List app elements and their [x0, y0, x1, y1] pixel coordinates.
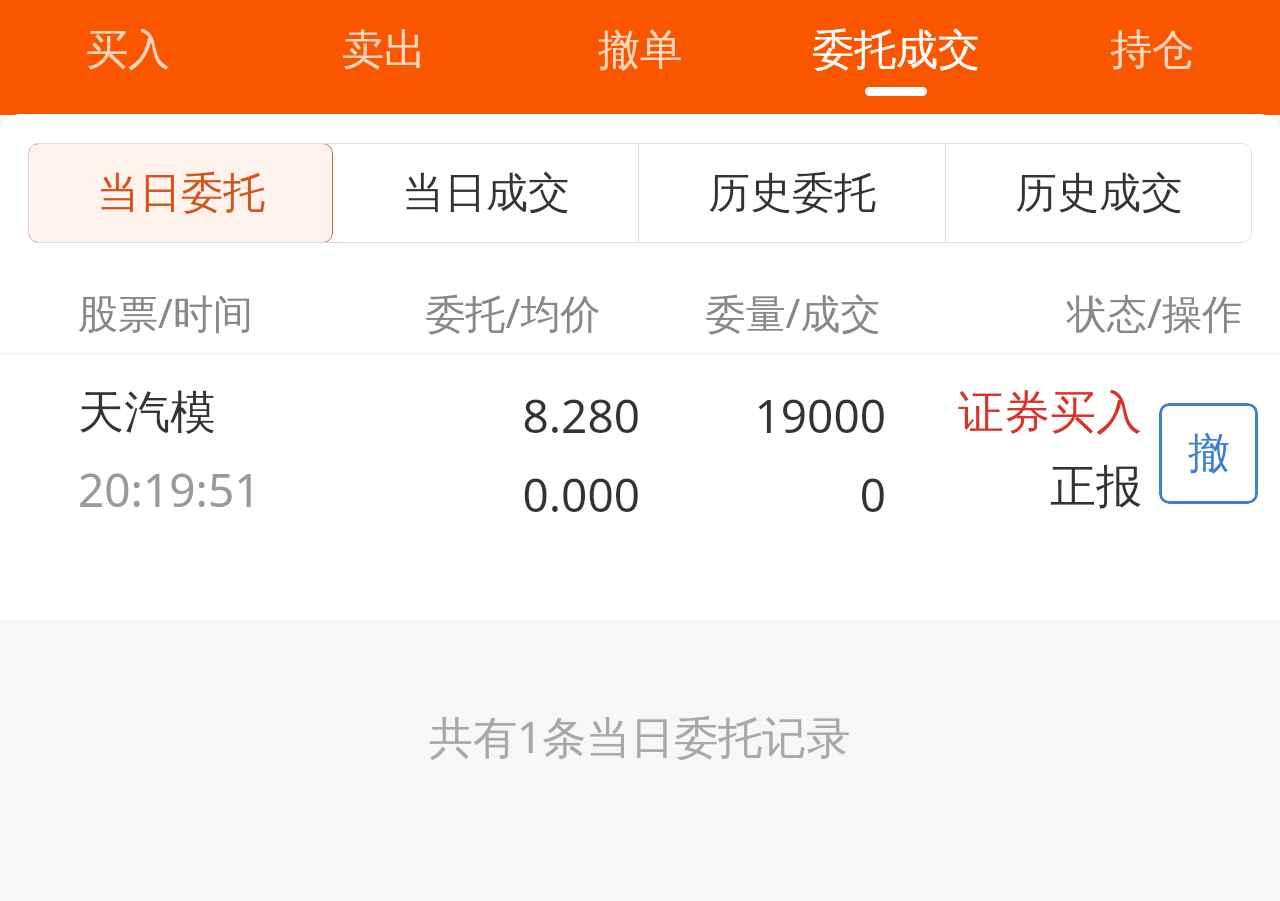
staticText: 买入 [86, 24, 170, 77]
staticText: 证券买入 [958, 384, 1142, 442]
button[interactable]: 当日委托 [28, 143, 333, 243]
staticText: 状态/操作 [933, 285, 1242, 340]
button[interactable]: 买入 [48, 0, 208, 115]
button[interactable]: 历史成交 [946, 143, 1252, 243]
button[interactable]: 历史委托 [639, 143, 945, 243]
staticText: 8.280 [522, 384, 640, 447]
staticText: 撤单 [598, 24, 682, 77]
staticText: 历史委托 [708, 167, 876, 220]
button[interactable]: 撤单 [1159, 403, 1258, 504]
staticText: 正报 [1050, 458, 1142, 516]
staticText: 共有1条当日委托记录 [429, 706, 851, 766]
button[interactable]: 持仓 [1072, 0, 1232, 115]
staticText: 0 [859, 463, 886, 526]
staticText: 委托成交 [812, 24, 980, 77]
button[interactable]: 天汽模 [0, 354, 1280, 590]
staticText: 当日成交 [402, 167, 570, 220]
staticText: 19000 [754, 384, 886, 447]
staticText: 股票/时间 [78, 285, 373, 340]
staticText: 持仓 [1110, 24, 1194, 77]
staticText: 委托/均价 [373, 285, 653, 340]
staticText: 委量/成交 [653, 285, 933, 340]
staticText: 20:19:51 [78, 458, 261, 521]
staticText: 历史成交 [1015, 167, 1183, 220]
staticText: 0.000 [522, 463, 640, 526]
button[interactable]: 撤单 [560, 0, 720, 115]
staticText: 撤 [1188, 427, 1230, 480]
button[interactable]: 卖出 [304, 0, 464, 115]
button[interactable]: 当日成交 [333, 143, 638, 243]
staticText: 当日委托 [97, 167, 265, 220]
button[interactable]: 委托成交 [766, 0, 1026, 115]
staticText: 卖出 [342, 24, 426, 77]
staticText: 天汽模 [78, 384, 216, 442]
